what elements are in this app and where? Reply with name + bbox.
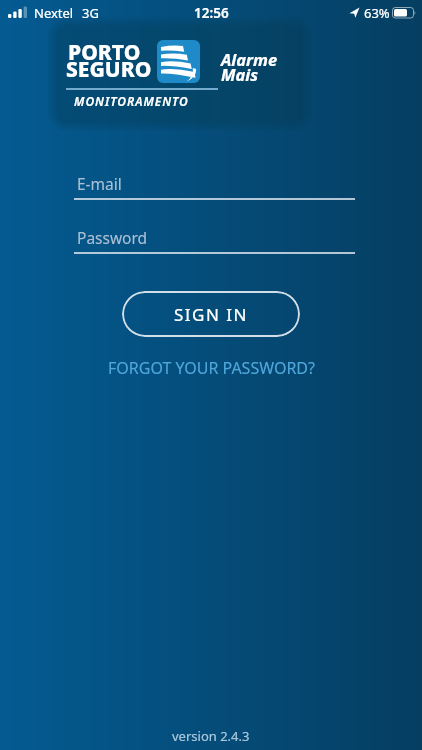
staticText: 3G bbox=[82, 4, 99, 22]
staticText: version 2.4.3 bbox=[172, 727, 250, 745]
staticText: Nextel bbox=[34, 4, 74, 22]
staticText: Alarme bbox=[221, 48, 278, 70]
button[interactable]: Password bbox=[74, 219, 355, 259]
button[interactable]: FORGOT YOUR PASSWORD? bbox=[108, 357, 315, 379]
staticText: 63% bbox=[364, 4, 390, 22]
staticText: MONITORAMENTO bbox=[74, 93, 189, 109]
staticText: E-mail bbox=[77, 173, 122, 194]
staticText: 12:56 bbox=[194, 4, 229, 22]
staticText: SIGN IN bbox=[174, 303, 248, 326]
button[interactable]: SIGN IN bbox=[122, 291, 300, 337]
staticText: Mais bbox=[221, 63, 259, 85]
staticText: PORTO bbox=[68, 38, 141, 67]
button[interactable]: E-mail bbox=[74, 165, 355, 205]
staticText: SEGURO bbox=[66, 55, 152, 84]
staticText: Password bbox=[77, 227, 148, 248]
